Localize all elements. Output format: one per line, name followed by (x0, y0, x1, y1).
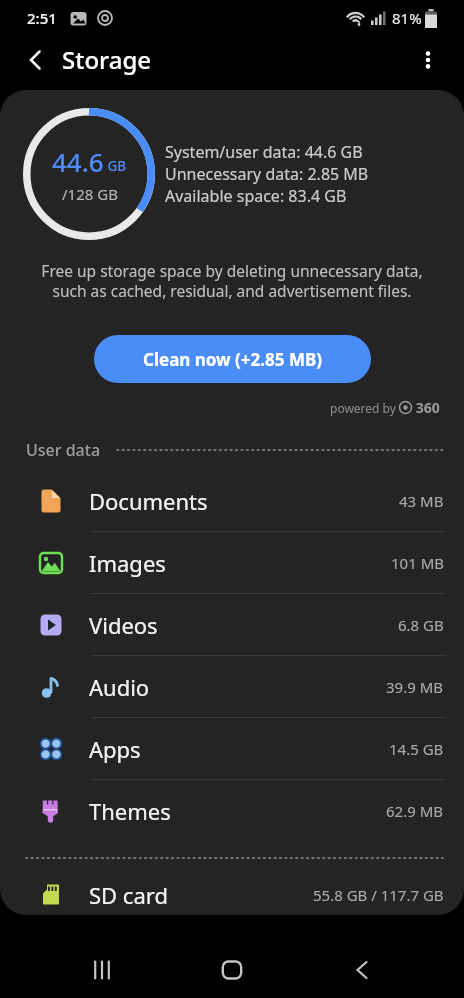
staticText: 101 MB (391, 553, 444, 573)
button[interactable]: Themes (0, 780, 464, 842)
staticText: 62.9 MB (386, 801, 444, 821)
button[interactable]: Images (0, 532, 464, 594)
button[interactable] (404, 36, 452, 83)
button[interactable]: Clean now (+2.85 MB) (94, 335, 371, 383)
button[interactable] (334, 942, 390, 998)
staticText: 6.8 GB (398, 615, 444, 635)
staticText: 360 (412, 398, 440, 417)
staticText: Audio (89, 672, 386, 702)
button[interactable]: SD card (0, 875, 464, 915)
button[interactable] (204, 942, 260, 998)
staticText: Unnecessary data: 2.85 MB (165, 163, 369, 185)
staticText: Apps (89, 734, 389, 764)
staticText: 43 MB (399, 491, 444, 511)
staticText: 14.5 GB (389, 739, 444, 759)
staticText: Themes (89, 796, 386, 826)
staticText: 39.9 MB (386, 677, 444, 697)
staticText: Images (89, 548, 391, 578)
staticText: SD card (89, 880, 313, 910)
button[interactable]: Apps (0, 718, 464, 780)
staticText: 55.8 GB / 117.7 GB (313, 885, 444, 905)
staticText: 2:51 (27, 8, 57, 28)
button[interactable]: Documents (0, 470, 464, 532)
staticText: Videos (89, 610, 398, 640)
staticText: 81% (392, 8, 422, 28)
staticText: /128 GB (62, 184, 118, 204)
staticText: Storage (62, 43, 152, 76)
staticText: User data (26, 439, 101, 461)
staticText: GB (104, 157, 127, 175)
button[interactable]: Audio (0, 656, 464, 718)
button[interactable] (74, 942, 130, 998)
button[interactable] (14, 38, 58, 82)
staticText: powered by (330, 400, 399, 416)
button[interactable]: Videos (0, 594, 464, 656)
staticText: Documents (89, 486, 399, 516)
staticText: System/user data: 44.6 GB (165, 141, 363, 163)
staticText: 44.6 (52, 144, 104, 179)
staticText: Available space: 83.4 GB (165, 185, 347, 207)
staticText: Clean now (+2.85 MB) (143, 348, 323, 371)
staticText: Free up storage space by deleting unnece… (0, 260, 464, 302)
